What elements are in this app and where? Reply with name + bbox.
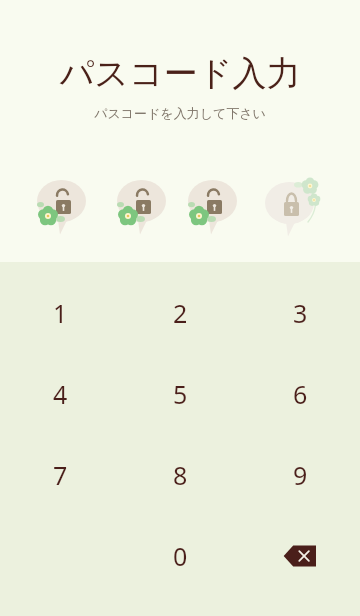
staticText: 0	[173, 539, 188, 573]
button[interactable]: 9	[240, 434, 360, 515]
staticText: 1	[53, 296, 68, 330]
button[interactable]: 8	[120, 434, 240, 515]
staticText: 3	[293, 296, 308, 330]
staticText: 4	[53, 377, 68, 411]
button[interactable]: 5	[120, 353, 240, 434]
staticText: パスコードを入力して下さい	[94, 105, 266, 121]
button[interactable]: 4	[0, 353, 120, 434]
staticText: 7	[53, 458, 68, 492]
button[interactable]: 6	[240, 353, 360, 434]
button[interactable]: Delete	[240, 515, 360, 596]
button[interactable]: 1	[0, 272, 120, 353]
button[interactable]: 0	[120, 515, 240, 596]
staticText: 2	[173, 296, 188, 330]
staticText: 9	[293, 458, 308, 492]
staticText: 6	[293, 377, 308, 411]
staticText: 5	[173, 377, 188, 411]
staticText: パスコード入力	[59, 52, 301, 95]
button[interactable]: 2	[120, 272, 240, 353]
button[interactable]: 3	[240, 272, 360, 353]
staticText: 8	[173, 458, 188, 492]
button[interactable]: 7	[0, 434, 120, 515]
